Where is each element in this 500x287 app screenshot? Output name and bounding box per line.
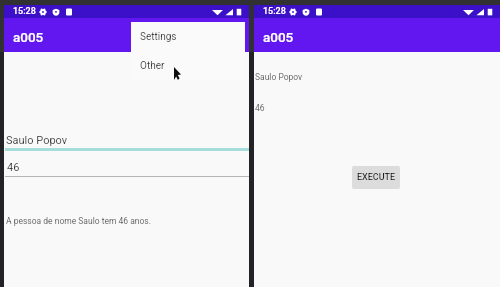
- other: Battery: [236, 8, 242, 16]
- staticText: 15:28: [13, 6, 36, 17]
- staticText: EXECUTE: [357, 172, 396, 183]
- other: Mobile signal: [476, 8, 484, 16]
- staticText: 15:28: [263, 6, 286, 17]
- staticText: Settings: [140, 31, 177, 43]
- staticText: 46: [255, 103, 265, 113]
- other: Settings: [289, 8, 297, 16]
- staticText: Saulo Popov: [6, 134, 68, 147]
- button[interactable]: Other: [131, 51, 245, 80]
- other: Security: [302, 8, 310, 16]
- other: Battery: [487, 8, 493, 16]
- button[interactable]: Settings: [131, 22, 245, 51]
- staticText: A pessoa de nome Saulo tem 46 anos.: [6, 216, 151, 226]
- staticText: a005: [13, 29, 44, 45]
- other: Mobile signal: [225, 8, 233, 16]
- staticText: Other: [140, 60, 165, 72]
- staticText: Saulo Popov: [255, 72, 303, 82]
- other: Storage: [66, 8, 72, 16]
- other: Settings: [39, 8, 47, 16]
- staticText: a005: [263, 29, 294, 45]
- other: Wi-Fi: [212, 8, 223, 16]
- other: Storage: [316, 8, 322, 16]
- button[interactable]: EXECUTE: [352, 166, 400, 189]
- staticText: 46: [7, 161, 20, 174]
- other: Security: [52, 8, 60, 16]
- other: Wi-Fi: [463, 8, 474, 16]
